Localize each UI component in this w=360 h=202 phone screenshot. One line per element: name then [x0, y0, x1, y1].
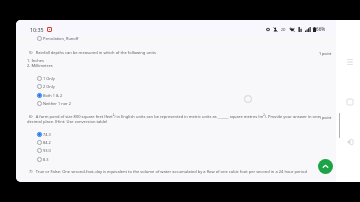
button[interactable]: 1 Only [37, 74, 55, 82]
staticText: Percolation, Runoff [43, 36, 79, 41]
staticText: 6) A farm pond of size 800 square feet (… [29, 114, 320, 120]
button[interactable]: Neither 1 nor 2 [37, 99, 71, 107]
staticText: 93.0 [43, 148, 51, 153]
staticText: 8.3 [43, 157, 49, 162]
staticText: 5) Rainfall depths can be measured in wh… [29, 50, 156, 56]
button[interactable]: 1 point [319, 50, 332, 56]
staticText: 7) True or False: One second-foot-day is… [29, 169, 307, 175]
staticText: 1. Inches [27, 58, 44, 64]
staticText: Both 1 & 2 [43, 93, 63, 98]
staticText: 1 Only [43, 76, 55, 81]
button[interactable]: Scroll to top [318, 159, 333, 174]
button[interactable]: 93.0 [37, 146, 51, 154]
staticText: 2D [281, 27, 286, 32]
staticText: decimal place. (Hint: Use conversion tab… [27, 119, 108, 125]
button[interactable]: 2 Only [37, 82, 55, 90]
staticText: 66% [316, 26, 326, 32]
staticText: 2 Only [43, 84, 55, 89]
staticText: 84.2 [43, 140, 51, 145]
button[interactable]: 84.2 [37, 138, 51, 146]
button[interactable]: 8.3 [37, 155, 49, 163]
button[interactable]: Both 1 & 2 [37, 91, 63, 99]
button[interactable]: Percolation, Runoff [37, 34, 79, 42]
button[interactable]: 74.3 [37, 130, 51, 138]
staticText: 1 point [319, 115, 332, 120]
staticText: 2. Millimetres [27, 63, 53, 69]
button[interactable]: Recents [343, 55, 357, 69]
staticText: Neither 1 nor 2 [43, 101, 71, 106]
staticText: 10:35 [30, 26, 44, 32]
button[interactable]: 1 point [319, 114, 332, 120]
staticText: 74.3 [43, 132, 51, 137]
button[interactable]: Back [343, 135, 357, 149]
staticText: 1 point [319, 51, 332, 56]
button[interactable]: Home [343, 95, 357, 109]
